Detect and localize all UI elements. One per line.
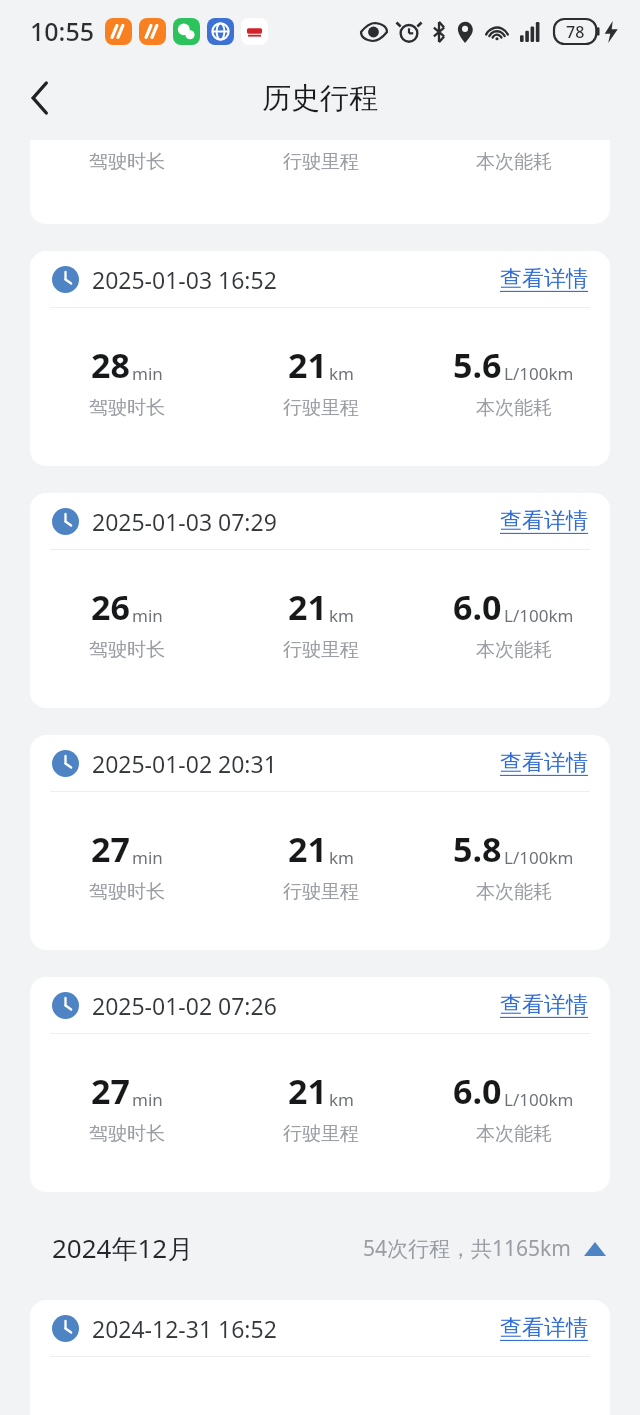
staticText: 21 [288, 1068, 327, 1114]
button[interactable]: 2025-01-03 16:52 [30, 251, 610, 466]
staticText: 5.6 [453, 342, 502, 388]
staticText: L/100km [504, 604, 574, 627]
staticText: 本次能耗 [476, 638, 552, 662]
staticText: 6.0 [453, 1068, 502, 1114]
staticText: 本次能耗 [476, 396, 552, 420]
staticText: 2024年12月 [52, 1230, 194, 1266]
staticText: 2025-01-02 07:26 [92, 990, 277, 1021]
staticText: 行驶里程 [283, 150, 359, 174]
staticText: 驾驶时长 [89, 638, 165, 662]
staticText: 28 [91, 342, 130, 388]
staticText: 2025-01-03 16:52 [92, 264, 277, 295]
staticText: 驾驶时长 [89, 1122, 165, 1146]
staticText: 21 [288, 342, 327, 388]
staticText: 驾驶时长 [89, 880, 165, 904]
staticText: 驾驶时长 [89, 396, 165, 420]
staticText: 27 [91, 1068, 130, 1114]
staticText: 26 [91, 584, 130, 630]
staticText: 本次能耗 [476, 150, 552, 174]
staticText: 行驶里程 [283, 1122, 359, 1146]
button[interactable]: 查看详情 [492, 745, 596, 781]
staticText: 2025-01-03 07:29 [92, 506, 277, 537]
staticText: 本次能耗 [476, 1122, 552, 1146]
staticText: 行驶里程 [283, 396, 359, 420]
staticText: min [132, 604, 163, 627]
staticText: L/100km [504, 1088, 574, 1111]
staticText: 查看详情 [500, 265, 588, 293]
staticText: 21 [288, 584, 327, 630]
staticText: 历史行程 [262, 80, 378, 117]
staticText: 78 [566, 21, 585, 43]
button[interactable]: 2024-12-31 16:52 [30, 1300, 610, 1415]
button[interactable]: 查看详情 [492, 503, 596, 539]
staticText: 查看详情 [500, 991, 588, 1019]
staticText: 查看详情 [500, 507, 588, 535]
staticText: km [329, 1088, 354, 1111]
staticText: 6.0 [453, 584, 502, 630]
staticText: 本次能耗 [476, 880, 552, 904]
staticText: 查看详情 [500, 1314, 588, 1342]
staticText: km [329, 846, 354, 869]
staticText: 行驶里程 [283, 638, 359, 662]
staticText: min [132, 846, 163, 869]
staticText: 2025-01-02 20:31 [92, 748, 277, 779]
staticText: min [132, 1088, 163, 1111]
button[interactable]: 查看详情 [492, 1310, 596, 1346]
staticText: 2024-12-31 16:52 [92, 1313, 277, 1344]
staticText: 21 [288, 826, 327, 872]
staticText: 查看详情 [500, 749, 588, 777]
button[interactable]: 2024年12月 [30, 1218, 610, 1278]
button[interactable]: 驾驶时长 [30, 140, 610, 224]
staticText: min [132, 362, 163, 385]
staticText: L/100km [504, 362, 574, 385]
button[interactable]: 2025-01-02 20:31 [30, 735, 610, 950]
button[interactable]: 查看详情 [492, 261, 596, 297]
staticText: 行驶里程 [283, 880, 359, 904]
staticText: 27 [91, 826, 130, 872]
staticText: 54次行程，共1165km [363, 1234, 571, 1263]
staticText: 5.8 [453, 826, 502, 872]
staticText: km [329, 604, 354, 627]
staticText: km [329, 362, 354, 385]
button[interactable]: 2025-01-02 07:26 [30, 977, 610, 1192]
button[interactable]: 返回 [12, 70, 68, 126]
staticText: L/100km [504, 846, 574, 869]
staticText: 10:55 [30, 14, 95, 48]
staticText: 驾驶时长 [89, 150, 165, 174]
button[interactable]: 2025-01-03 07:29 [30, 493, 610, 708]
button[interactable]: 查看详情 [492, 987, 596, 1023]
